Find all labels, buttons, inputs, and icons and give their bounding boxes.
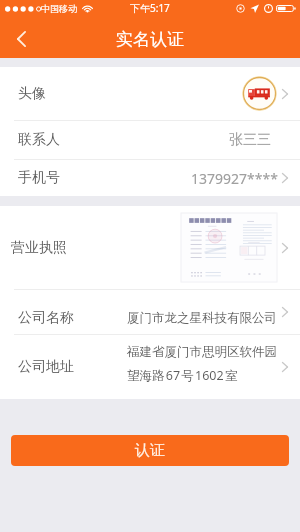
button[interactable]: 公司地址 <box>0 335 300 399</box>
staticText: 下午5:17 <box>130 1 170 15</box>
button[interactable]: 公司名称 <box>0 290 300 334</box>
staticText: 公司名称 <box>18 309 74 327</box>
staticText: 手机号 <box>18 169 60 187</box>
button[interactable]: 认证 <box>11 435 289 466</box>
staticText: 联系人 <box>18 131 60 149</box>
staticText: 中国移动 <box>41 3 77 14</box>
staticText: 福建省厦门市思明区软件园 望海路 67 号 1602 室 <box>127 344 277 384</box>
staticText: 营业执照 <box>11 239 67 257</box>
staticText: 张三三 <box>229 131 271 149</box>
button[interactable]: 联系人 <box>0 121 300 159</box>
button[interactable]: 手机号 <box>0 160 300 196</box>
staticText: 1379927**** <box>191 169 278 188</box>
staticText: 实名认证 <box>116 29 184 50</box>
staticText: 公司地址 <box>18 358 74 376</box>
staticText: 头像 <box>18 85 46 103</box>
button[interactable]: 营业执照 <box>0 206 300 289</box>
button[interactable]: 头像 <box>0 67 300 120</box>
staticText: 认证 <box>135 441 165 460</box>
button[interactable]: Back <box>0 20 42 58</box>
staticText: 厦门市龙之星科技有限公司 <box>127 310 277 326</box>
